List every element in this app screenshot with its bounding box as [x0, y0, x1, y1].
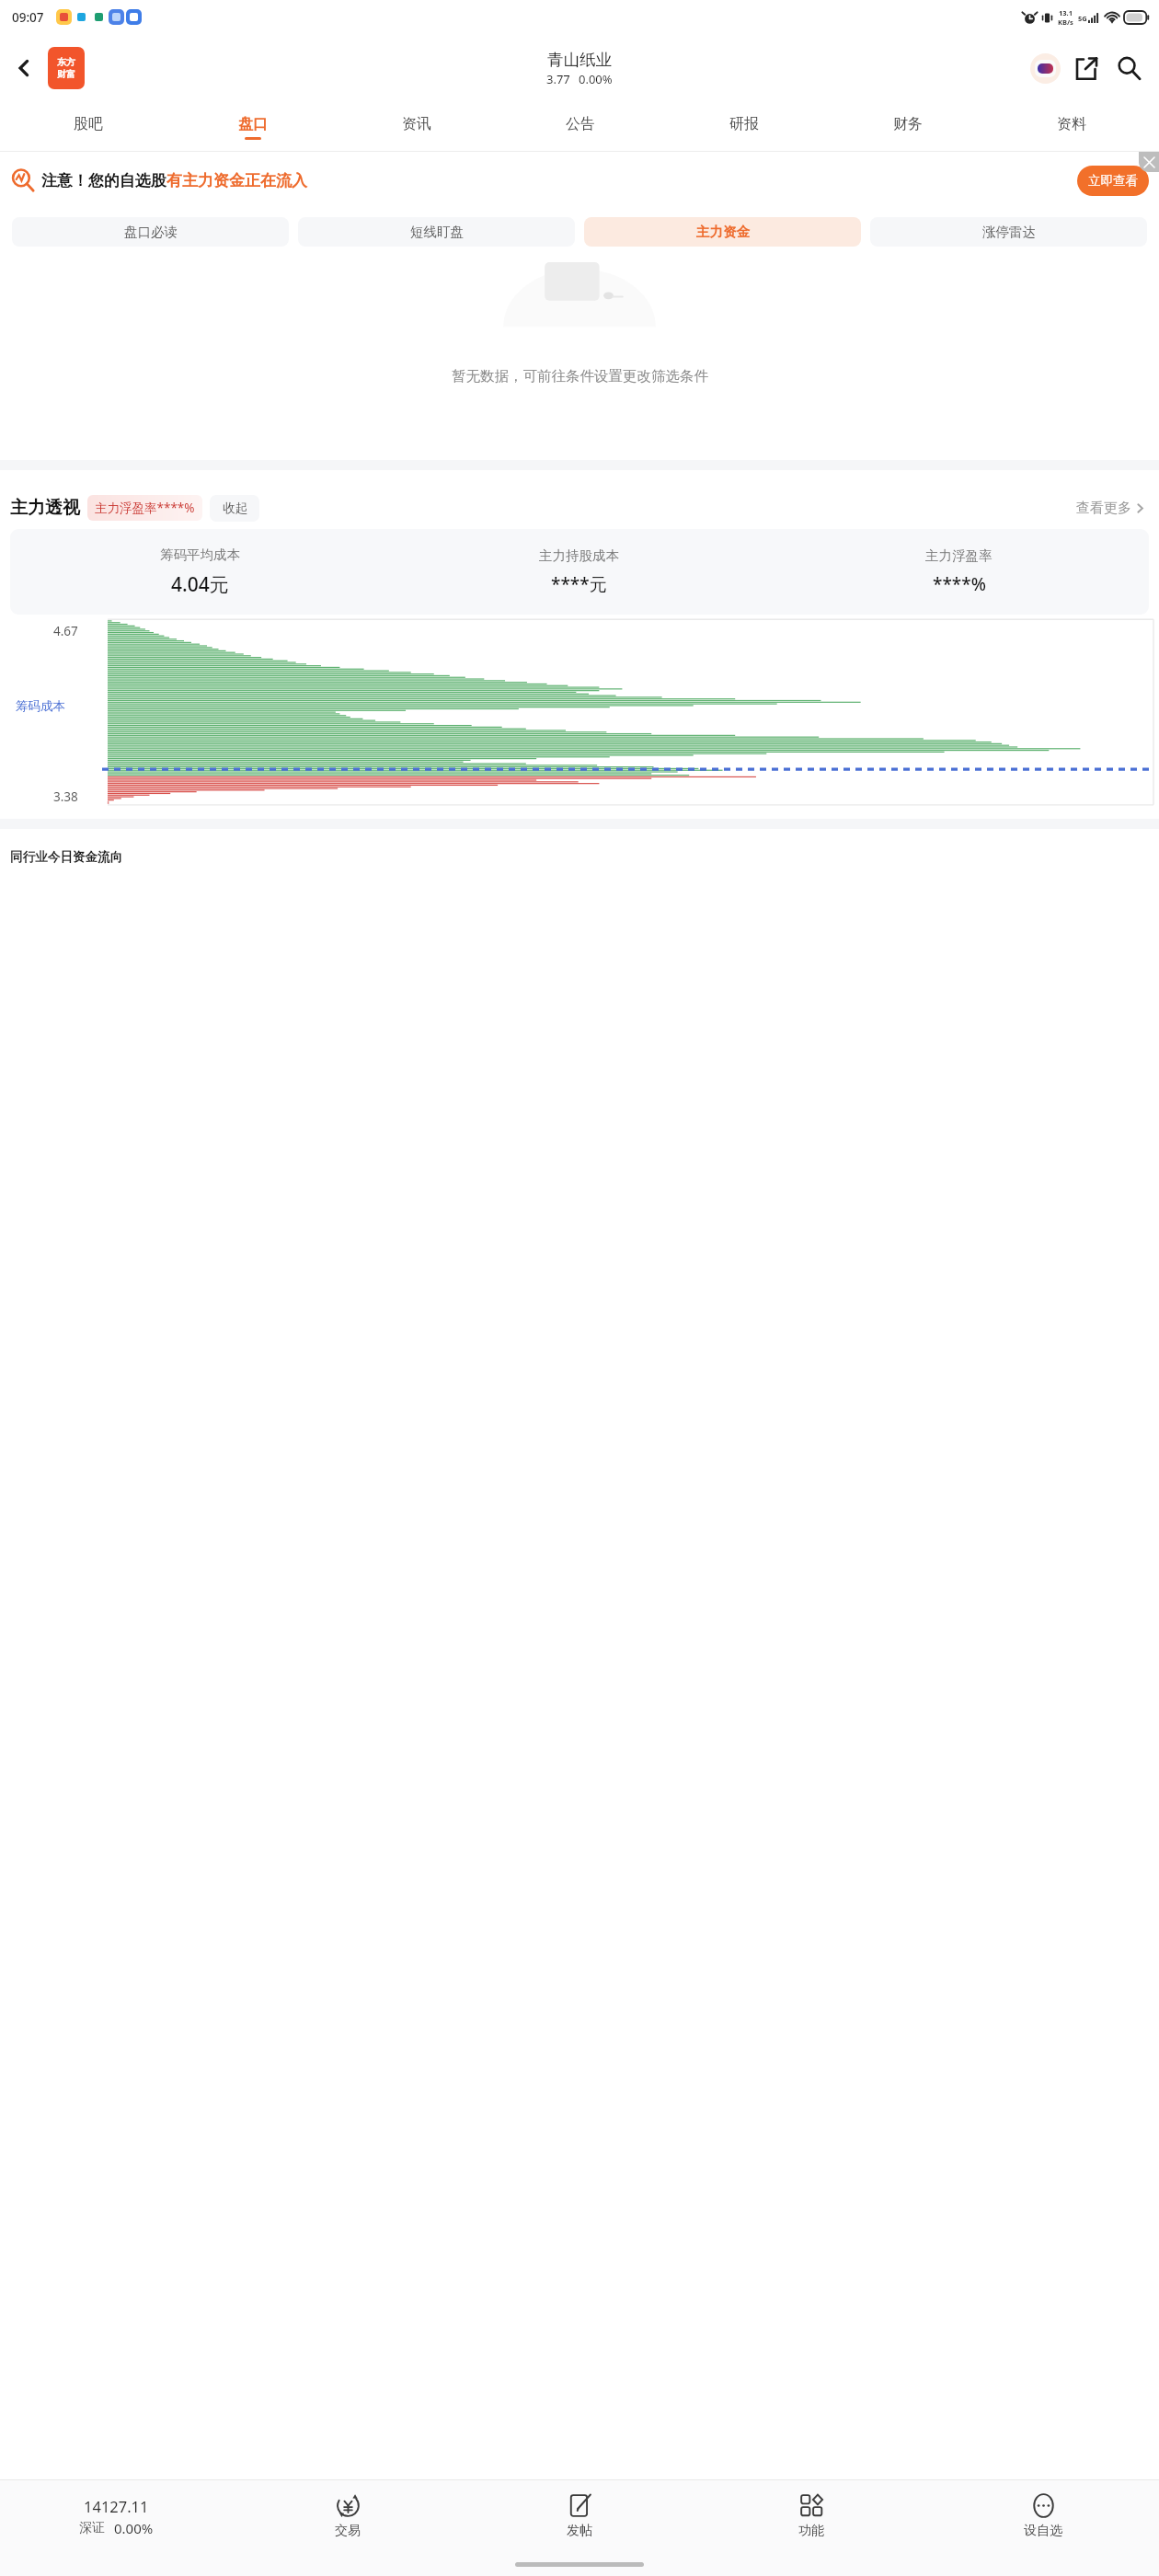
staticText: 主力持股成本: [539, 547, 619, 564]
button[interactable]: 盘口必读: [12, 217, 289, 247]
staticText: 查看更多: [1076, 500, 1131, 517]
staticText: 交易: [335, 2523, 361, 2539]
button[interactable]: 设自选: [927, 2480, 1159, 2552]
staticText: 13.1: [1059, 8, 1073, 17]
button[interactable]: Close: [1139, 152, 1159, 172]
button[interactable]: 主力浮盈率****%: [95, 495, 195, 521]
button[interactable]: 发帖: [464, 2480, 695, 2552]
button[interactable]: 东方财富: [48, 47, 85, 89]
staticText: 立即查看: [1088, 173, 1138, 189]
staticText: 涨停雷达: [982, 224, 1036, 240]
button[interactable]: 14127.11: [0, 2480, 232, 2552]
staticText: 主力资金: [696, 224, 750, 240]
button[interactable]: Share: [1065, 47, 1107, 89]
button[interactable]: 主力资金: [584, 217, 861, 247]
staticText: 主力透视: [10, 497, 80, 519]
staticText: 收起: [223, 500, 247, 516]
button[interactable]: 财务: [826, 102, 990, 152]
button[interactable]: 查看更多: [1073, 496, 1149, 521]
button[interactable]: 筹码平均成本: [10, 529, 1149, 615]
staticText: 盘口: [238, 115, 268, 133]
staticText: 深证: [79, 2520, 105, 2536]
button[interactable]: 注意！您的自选股: [0, 152, 1159, 209]
staticText: 研报: [729, 115, 759, 133]
staticText: 设自选: [1024, 2523, 1062, 2539]
staticText: 注意！您的自选股: [41, 171, 166, 190]
button[interactable]: Back: [4, 48, 44, 88]
staticText: 公告: [566, 115, 595, 133]
staticText: 0.00%: [114, 2519, 154, 2537]
button[interactable]: 立即查看: [1077, 166, 1149, 196]
button[interactable]: 股吧: [6, 102, 170, 152]
button[interactable]: 公告: [499, 102, 662, 152]
staticText: 盘口必读: [124, 224, 178, 240]
staticText: 3.38: [53, 788, 78, 805]
staticText: 短线盯盘: [410, 224, 464, 240]
staticText: 0.00%: [579, 71, 613, 87]
staticText: 3.77: [546, 71, 570, 87]
staticText: 财富: [57, 68, 75, 80]
staticText: 发帖: [567, 2523, 592, 2539]
staticText: 筹码平均成本: [160, 546, 240, 563]
button[interactable]: 短线盯盘: [298, 217, 575, 247]
staticText: 主力浮盈率: [925, 547, 993, 564]
staticText: 5G: [1078, 14, 1087, 23]
staticText: 资讯: [402, 115, 431, 133]
staticText: 青山纸业: [547, 50, 612, 70]
staticText: 东方: [57, 56, 75, 68]
button[interactable]: 资讯: [335, 102, 499, 152]
staticText: 同行业今日资金流向: [10, 849, 123, 865]
button[interactable]: 涨停雷达: [870, 217, 1147, 247]
staticText: 4.67: [53, 623, 78, 639]
staticText: 暂无数据，可前往条件设置更改筛选条件: [452, 367, 708, 385]
button[interactable]: Search: [1107, 47, 1150, 89]
button[interactable]: 盘口: [170, 102, 335, 152]
staticText: 14127.11: [84, 2496, 149, 2516]
staticText: 有主力资金正在流入: [166, 171, 307, 190]
button[interactable]: 资料: [990, 102, 1153, 152]
staticText: ****元: [551, 572, 607, 596]
button[interactable]: 收起: [210, 495, 259, 522]
staticText: 09:07: [12, 9, 44, 26]
button[interactable]: 研报: [662, 102, 826, 152]
staticText: KB/s: [1058, 17, 1073, 27]
staticText: 财务: [893, 115, 923, 133]
staticText: 资料: [1057, 115, 1086, 133]
staticText: 股吧: [74, 115, 103, 133]
button[interactable]: AI助手: [1025, 48, 1065, 88]
staticText: ****%: [933, 572, 986, 596]
button[interactable]: 交易: [232, 2480, 464, 2552]
staticText: 4.04元: [171, 571, 229, 598]
staticText: 筹码成本: [16, 698, 65, 714]
staticText: 主力浮盈率****%: [95, 500, 195, 516]
staticText: 功能: [798, 2523, 824, 2539]
button[interactable]: 功能: [695, 2480, 927, 2552]
